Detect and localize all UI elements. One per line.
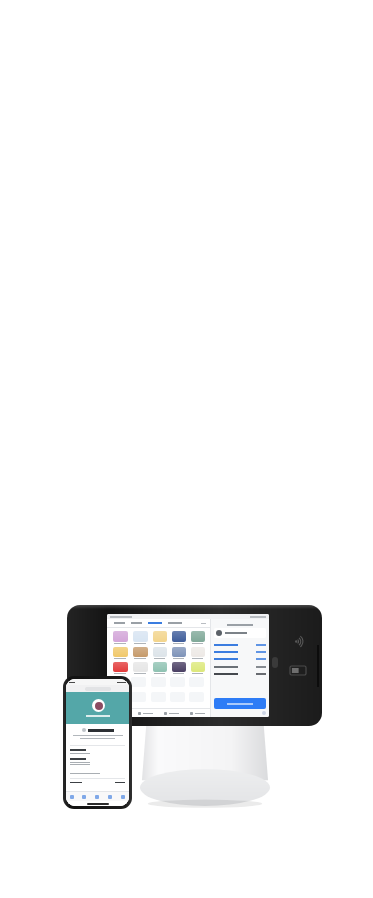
- button[interactable]: [107, 709, 132, 717]
- button[interactable]: Contactless payment: [67, 605, 322, 726]
- button[interactable]: [158, 709, 184, 717]
- button[interactable]: [214, 698, 266, 709]
- button[interactable]: Bookmarks: [103, 792, 116, 801]
- button[interactable]: [111, 647, 129, 660]
- button[interactable]: [170, 647, 187, 660]
- other: Contactless payment: [289, 635, 309, 648]
- button[interactable]: [214, 648, 266, 655]
- button[interactable]: Tabs: [116, 792, 129, 801]
- button[interactable]: [170, 631, 187, 645]
- button[interactable]: [131, 631, 149, 645]
- button[interactable]: [131, 692, 146, 702]
- button[interactable]: [107, 614, 269, 717]
- button[interactable]: Share: [90, 792, 103, 801]
- button[interactable]: [151, 647, 168, 660]
- other: Register stand: [140, 714, 270, 806]
- button[interactable]: [214, 641, 266, 648]
- button[interactable]: [151, 631, 168, 645]
- button[interactable]: [111, 677, 126, 687]
- button[interactable]: [131, 677, 146, 687]
- button[interactable]: Back: [63, 676, 132, 809]
- button[interactable]: [214, 628, 266, 638]
- button[interactable]: [184, 709, 210, 717]
- button[interactable]: [132, 709, 158, 717]
- button[interactable]: [131, 662, 149, 675]
- button[interactable]: [189, 631, 206, 645]
- other: Card reader: [290, 666, 306, 675]
- button[interactable]: [189, 647, 206, 660]
- button[interactable]: [111, 662, 129, 675]
- button[interactable]: Forward: [78, 792, 90, 801]
- button[interactable]: [131, 647, 149, 660]
- button[interactable]: Back: [66, 792, 78, 801]
- button[interactable]: [214, 663, 266, 670]
- button[interactable]: [151, 662, 168, 675]
- button[interactable]: [111, 631, 129, 645]
- button[interactable]: [170, 662, 187, 675]
- button[interactable]: [214, 670, 266, 677]
- button[interactable]: [214, 655, 266, 662]
- button[interactable]: [189, 662, 206, 675]
